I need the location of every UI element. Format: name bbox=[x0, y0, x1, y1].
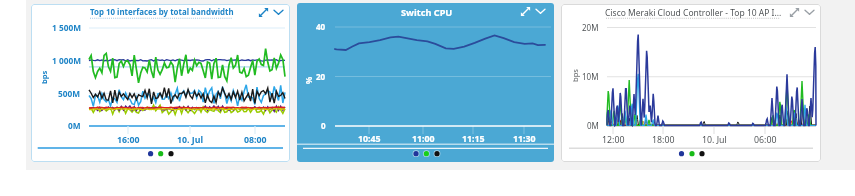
staticText: 18:00 bbox=[652, 134, 675, 146]
staticText: 0M bbox=[587, 120, 599, 131]
button[interactable]: Top 10 interfaces by total bandwidth bbox=[31, 4, 290, 162]
staticText: 0M bbox=[68, 120, 81, 131]
staticText: 20M bbox=[582, 22, 599, 33]
staticText: % bbox=[303, 76, 314, 84]
button[interactable]: Widget options bbox=[534, 5, 547, 18]
staticText: 08:00 bbox=[244, 134, 267, 146]
staticText: 20 bbox=[316, 71, 326, 82]
staticText: bps bbox=[570, 69, 580, 82]
button[interactable]: Expand widget bbox=[519, 5, 532, 18]
staticText: 10:45 bbox=[358, 133, 381, 145]
button[interactable]: Widget options bbox=[272, 6, 285, 19]
staticText: 10M bbox=[582, 71, 599, 82]
staticText: Cisco Meraki Cloud Controller - Top 10 A… bbox=[605, 7, 782, 19]
staticText: 1 000M bbox=[52, 55, 81, 66]
staticText: 1 500M bbox=[52, 22, 81, 33]
staticText: 10. Jul bbox=[702, 134, 727, 146]
staticText: 12:00 bbox=[602, 134, 625, 146]
staticText: 11:15 bbox=[462, 133, 485, 145]
button[interactable]: Widget options bbox=[803, 6, 816, 19]
staticText: 16:00 bbox=[117, 134, 140, 146]
staticText: 0 bbox=[321, 120, 326, 131]
button[interactable]: Expand widget bbox=[257, 6, 270, 19]
staticText: bps bbox=[39, 70, 49, 84]
staticText: 06:00 bbox=[754, 134, 777, 146]
staticText: 10. Jul bbox=[177, 134, 204, 146]
button[interactable]: Expand widget bbox=[788, 6, 801, 19]
staticText: 40 bbox=[316, 21, 326, 32]
staticText: Top 10 interfaces by total bandwidth bbox=[90, 7, 234, 18]
button[interactable]: Switch CPU bbox=[297, 3, 554, 162]
button[interactable]: Cisco Meraki Cloud Controller - Top 10 A… bbox=[561, 4, 821, 162]
staticText: 11:30 bbox=[513, 133, 536, 145]
staticText: 11:00 bbox=[412, 133, 435, 145]
staticText: Switch CPU bbox=[401, 6, 453, 19]
staticText: 500M bbox=[58, 88, 81, 99]
